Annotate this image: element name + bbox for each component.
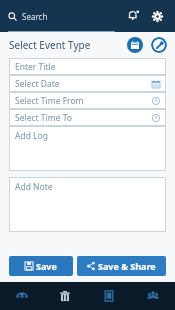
- button[interactable]: Add Log: [9, 126, 166, 171]
- button[interactable]: Enter Title: [9, 58, 166, 75]
- button[interactable]: People: [131, 282, 175, 310]
- staticText: Select Time From: [15, 95, 84, 107]
- button[interactable]: Search: [8, 9, 117, 24]
- staticText: Save & Share: [98, 260, 156, 272]
- button[interactable]: Save: [9, 256, 73, 276]
- button[interactable]: Select Time To: [9, 109, 166, 126]
- button[interactable]: Calendar: [127, 37, 143, 53]
- staticText: Select Date: [15, 78, 60, 90]
- staticText: Search: [22, 11, 48, 22]
- button[interactable]: Select Time From: [9, 92, 166, 109]
- button[interactable]: Add Note: [9, 177, 166, 232]
- button[interactable]: Trash: [43, 282, 87, 310]
- button[interactable]: Documents: [87, 282, 131, 310]
- button[interactable]: Settings: [147, 6, 167, 26]
- staticText: Save: [36, 260, 57, 272]
- staticText: Add Note: [15, 181, 53, 193]
- staticText: Select Time To: [15, 112, 72, 124]
- button[interactable]: Save & Share: [77, 256, 166, 276]
- button[interactable]: Select Date: [9, 75, 166, 92]
- staticText: Select Event Type: [9, 38, 91, 52]
- button[interactable]: Tools: [151, 37, 167, 53]
- staticText: Add Log: [15, 130, 48, 142]
- button[interactable]: Notifications: [123, 6, 143, 26]
- staticText: Enter Title: [15, 61, 56, 73]
- button[interactable]: Dashboard: [0, 282, 43, 310]
